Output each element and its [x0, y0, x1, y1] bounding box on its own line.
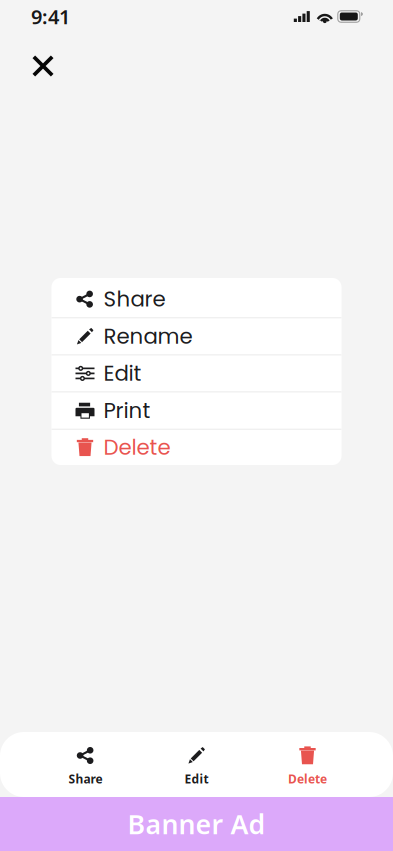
button[interactable]: Edit	[141, 732, 252, 797]
staticText: 9:41	[31, 3, 70, 30]
staticText: Rename	[103, 321, 192, 351]
button[interactable]: Edit	[51, 355, 341, 392]
button[interactable]: Close	[21, 44, 65, 88]
staticText: Share	[103, 284, 165, 314]
staticText: Print	[103, 396, 150, 425]
button[interactable]: Share	[51, 278, 341, 318]
staticText: Delete	[288, 771, 327, 787]
staticText: Edit	[103, 358, 141, 388]
button[interactable]: Delete	[252, 732, 363, 797]
button[interactable]: Delete	[51, 430, 341, 465]
staticText: Delete	[103, 432, 170, 462]
button[interactable]: Rename	[51, 318, 341, 355]
button[interactable]: Print	[51, 392, 341, 430]
staticText: Edit	[184, 771, 208, 787]
staticText: Share	[68, 771, 102, 787]
staticText: Banner Ad	[127, 806, 265, 842]
button[interactable]: Share	[30, 732, 141, 797]
